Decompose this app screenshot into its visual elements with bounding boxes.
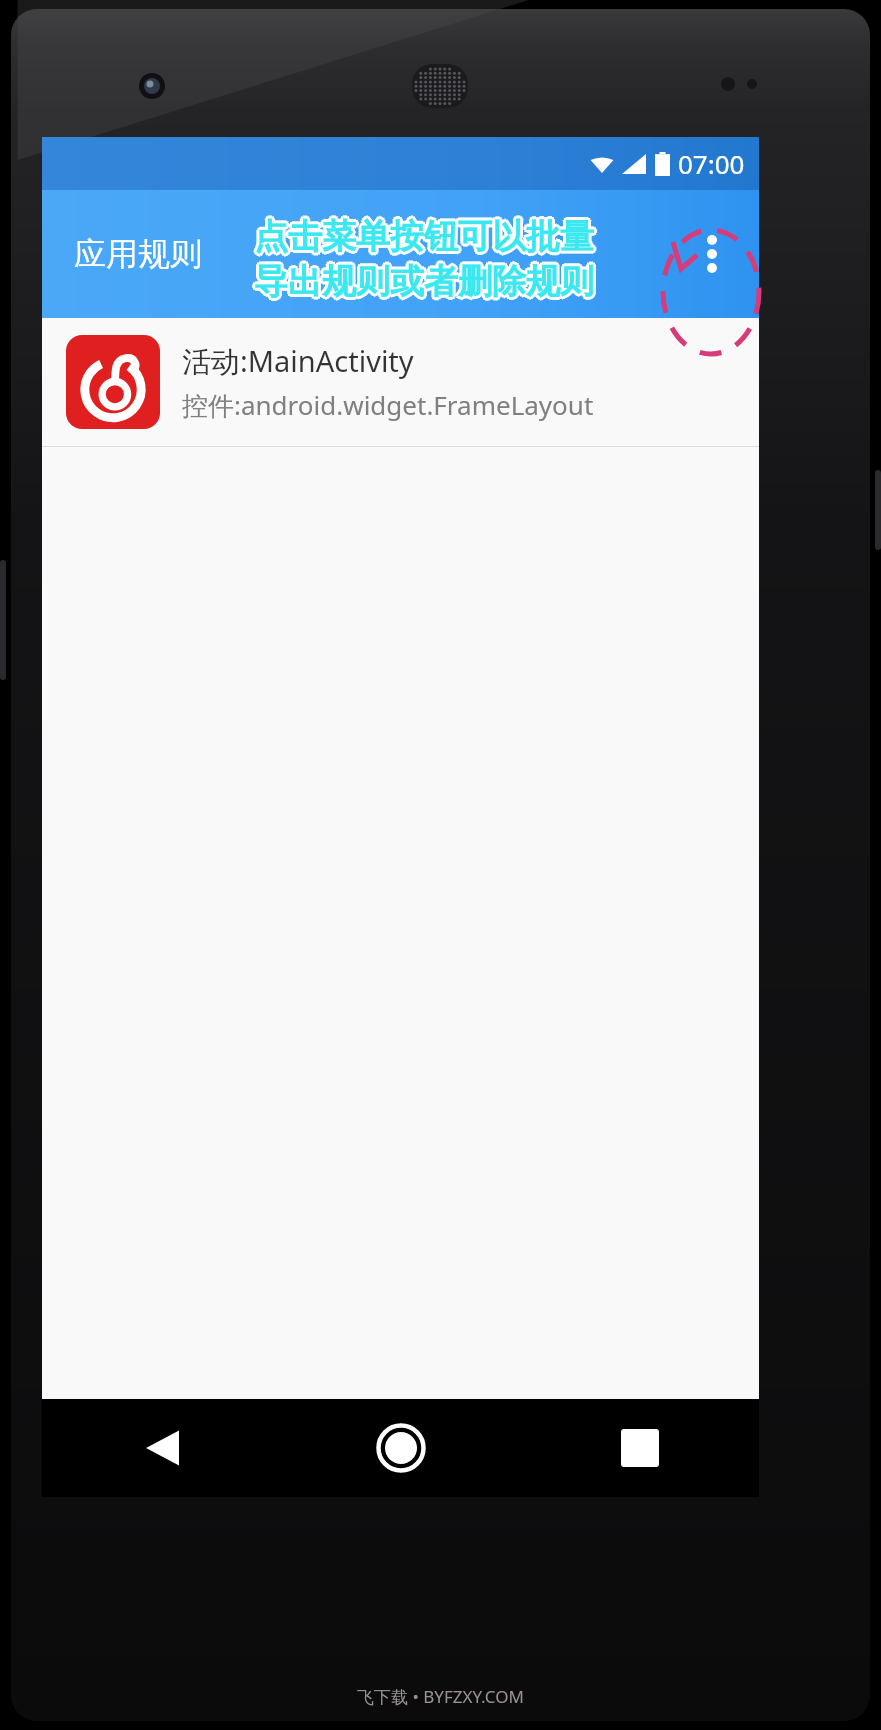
staticText: 导出规则或者删除规则 <box>254 262 594 305</box>
staticText: 导出规则或者删除规则 <box>256 258 596 301</box>
staticText: 导出规则或者删除规则 <box>251 260 591 303</box>
staticText: 点击菜单按钮可以批量 <box>252 213 592 256</box>
staticText: 导出规则或者删除规则 <box>252 258 592 301</box>
button[interactable]: 活动:MainActivity <box>42 318 759 446</box>
button[interactable]: More options <box>683 225 741 283</box>
staticText: 点击菜单按钮可以批量 <box>252 215 592 258</box>
staticText: 点击菜单按钮可以批量 <box>254 213 594 256</box>
staticText: 导出规则或者删除规则 <box>256 262 596 305</box>
staticText: 点击菜单按钮可以批量 <box>252 217 592 260</box>
staticText: 活动:MainActivity <box>182 341 414 381</box>
staticText: 点击菜单按钮可以批量 <box>256 213 596 256</box>
staticText: 导出规则或者删除规则 <box>254 263 594 306</box>
staticText: 导出规则或者删除规则 <box>254 257 594 300</box>
staticText: 点击菜单按钮可以批量 <box>257 215 597 258</box>
staticText: 控件:android.widget.FrameLayout <box>182 387 594 423</box>
staticText: 点击菜单按钮可以批量 <box>251 215 591 258</box>
staticText: 点击菜单按钮可以批量 <box>254 217 594 260</box>
staticText: 导出规则或者删除规则 <box>252 260 592 303</box>
staticText: 点击菜单按钮可以批量 <box>254 215 594 258</box>
staticText: 导出规则或者删除规则 <box>254 258 594 301</box>
staticText: 点击菜单按钮可以批量 <box>254 212 594 255</box>
staticText: 导出规则或者删除规则 <box>257 260 597 303</box>
staticText: 导出规则或者删除规则 <box>256 260 596 303</box>
button[interactable]: Home <box>281 1399 520 1497</box>
staticText: 飞下载 • BYFZXY.COM <box>357 1685 524 1708</box>
staticText: 点击菜单按钮可以批量 <box>256 215 596 258</box>
staticText: 应用规则 <box>74 234 202 274</box>
staticText: 导出规则或者删除规则 <box>254 260 594 303</box>
staticText: 点击菜单按钮可以批量 <box>254 218 594 261</box>
staticText: 07:00 <box>678 146 745 181</box>
staticText: 点击菜单按钮可以批量 <box>256 217 596 260</box>
staticText: 导出规则或者删除规则 <box>252 262 592 305</box>
button[interactable]: Recent apps <box>520 1399 759 1497</box>
button[interactable]: Back <box>42 1399 281 1497</box>
